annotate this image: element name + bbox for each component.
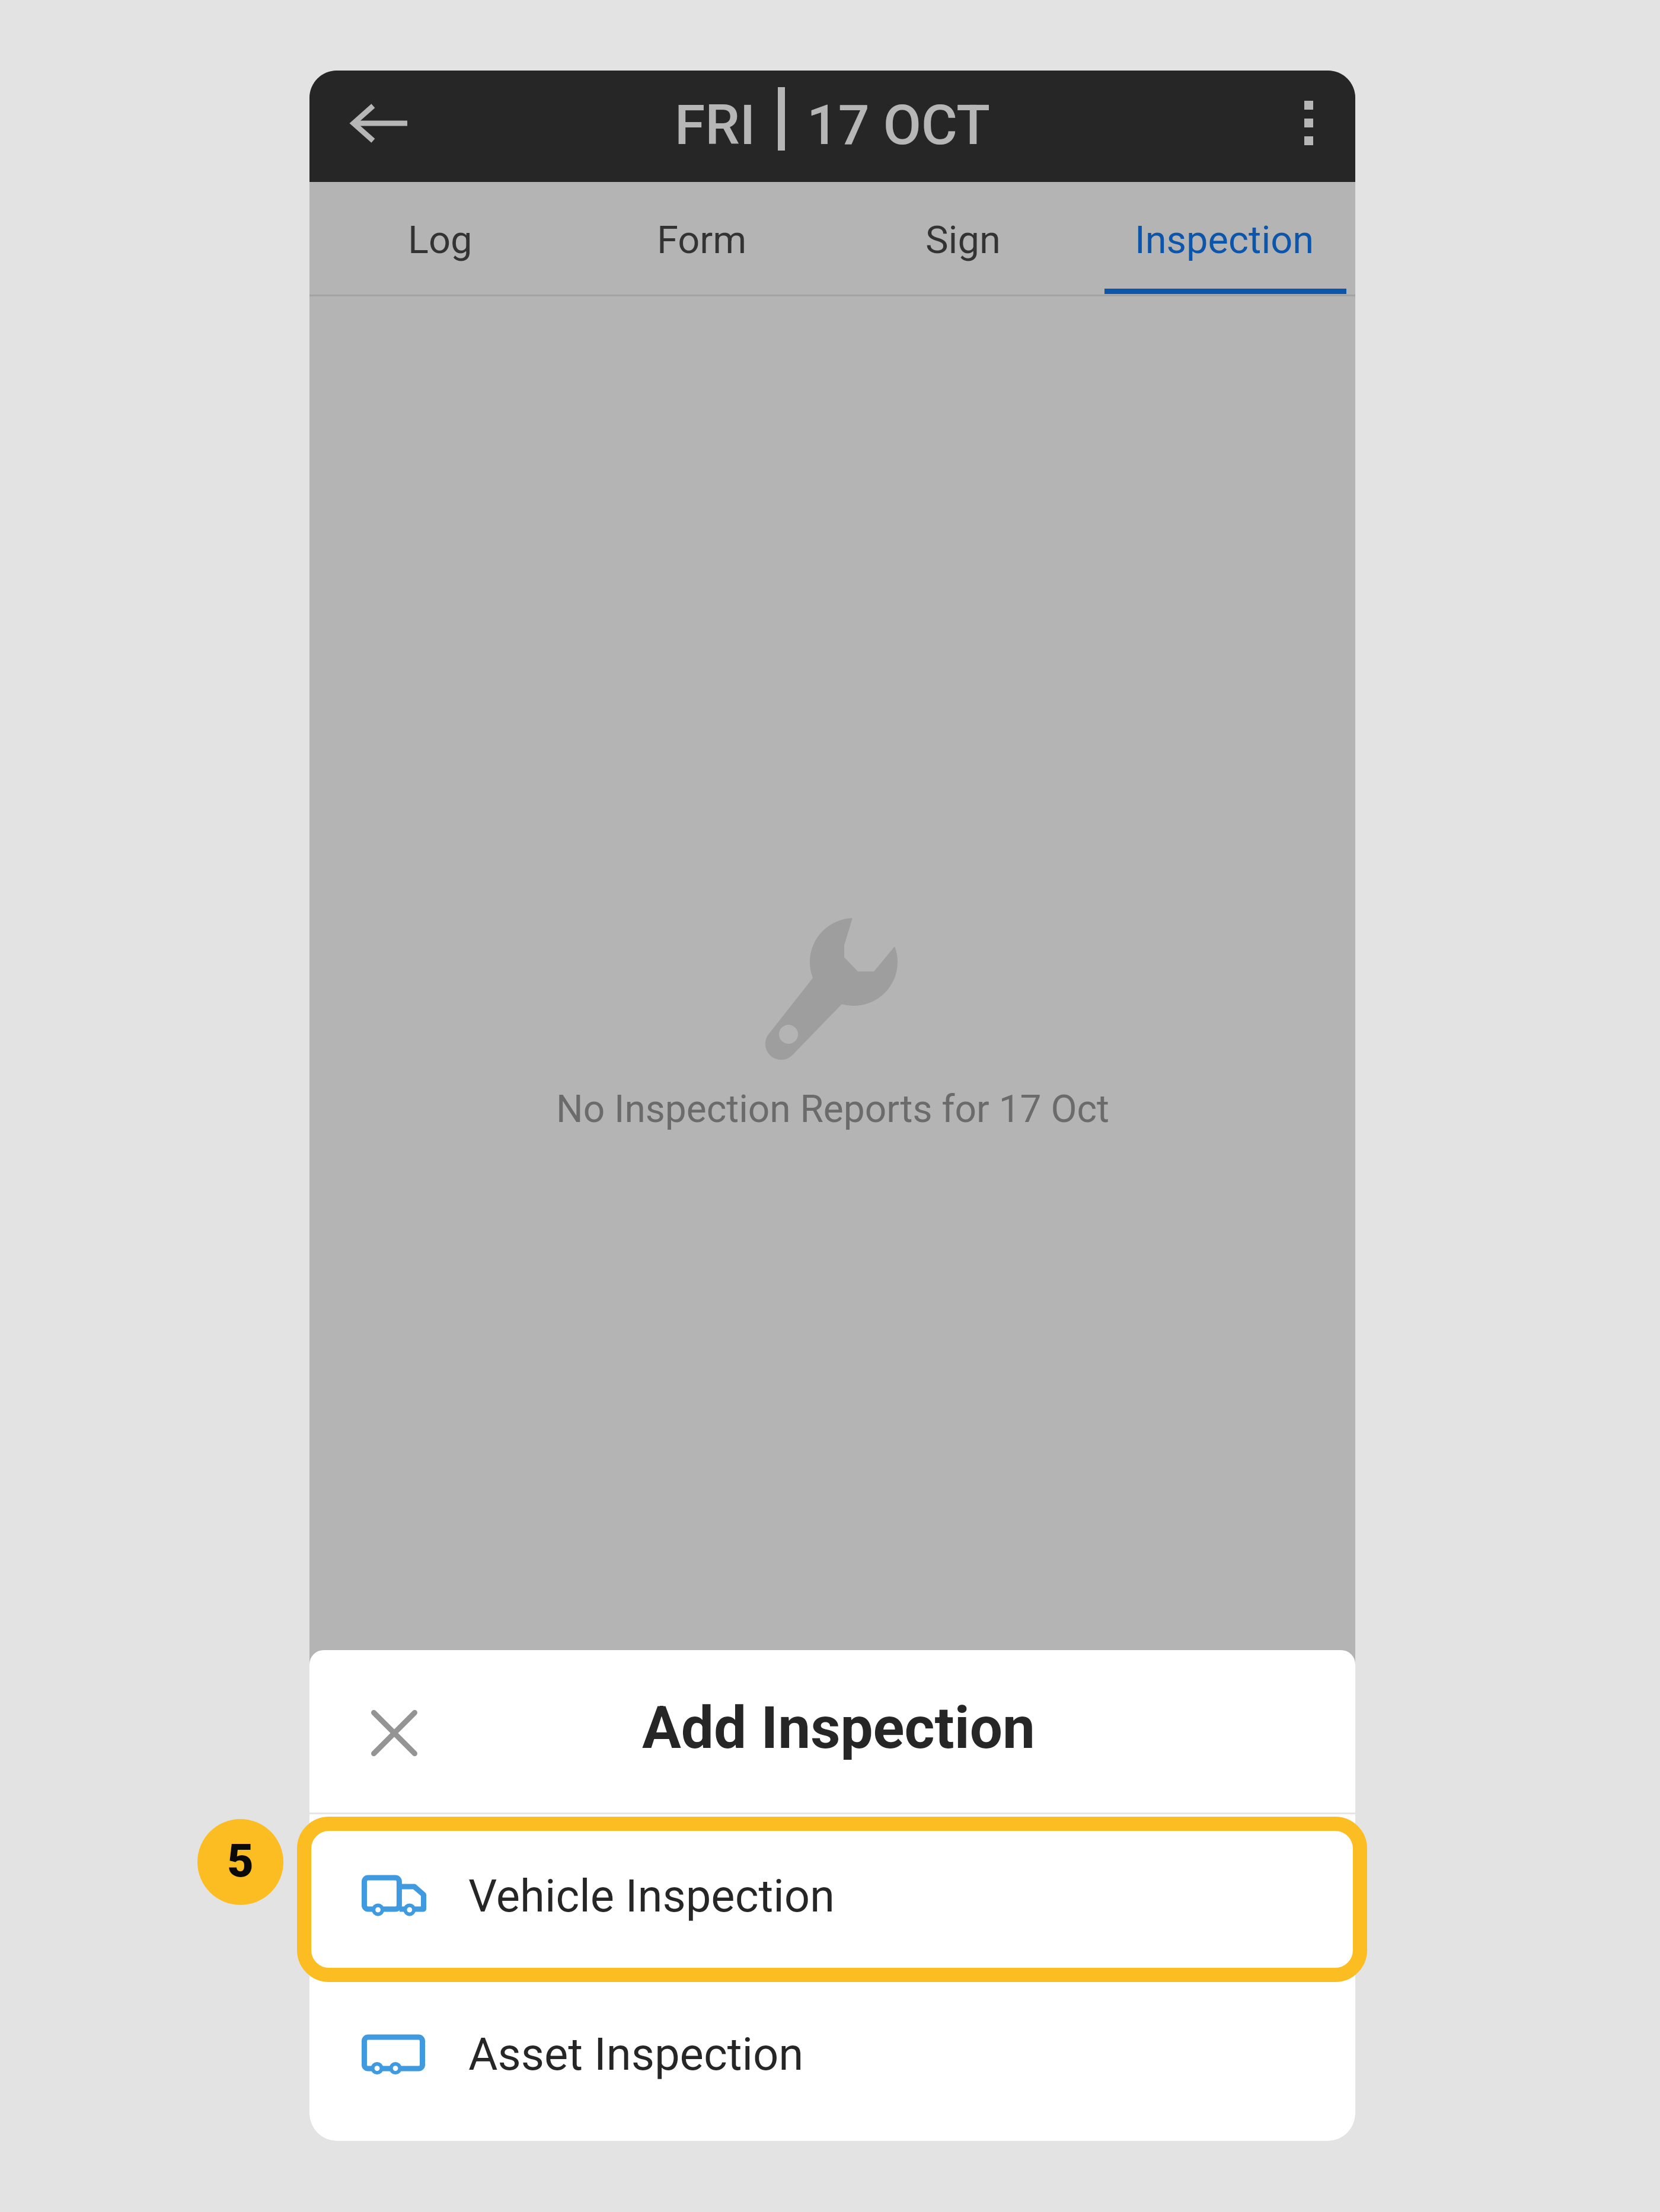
button[interactable]: Asset Inspection: [309, 1973, 1355, 2136]
button[interactable]: Log: [309, 218, 571, 295]
button[interactable]: More options: [1267, 81, 1350, 164]
staticText: Form: [657, 218, 747, 263]
staticText: FRI: [675, 93, 756, 158]
staticText: Asset Inspection: [468, 2028, 804, 2080]
button[interactable]: Vehicle Inspection: [309, 1814, 1355, 1977]
staticText: Log: [408, 218, 473, 263]
button[interactable]: Sign: [832, 218, 1094, 295]
staticText: Inspection: [1135, 218, 1314, 263]
button[interactable]: Form: [571, 218, 832, 295]
staticText: 17 OCT: [807, 93, 990, 158]
button[interactable]: Close: [353, 1692, 436, 1775]
button[interactable]: Back: [337, 82, 420, 165]
staticText: 5: [227, 1834, 254, 1888]
button[interactable]: Inspection: [1094, 218, 1355, 295]
staticText: Add Inspection: [642, 1694, 1035, 1762]
staticText: No Inspection Reports for 17 Oct: [556, 1087, 1109, 1131]
staticText: Vehicle Inspection: [468, 1869, 835, 1922]
staticText: Sign: [925, 218, 1001, 263]
